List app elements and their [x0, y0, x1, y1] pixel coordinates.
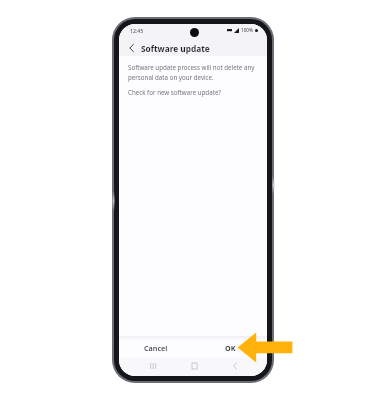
- staticText: Check for new software update?: [128, 88, 222, 96]
- button[interactable]: Back: [226, 357, 244, 375]
- staticText: Cancel: [144, 343, 168, 353]
- staticText: Software update: [141, 43, 210, 54]
- staticText: OK: [225, 343, 236, 353]
- button[interactable]: Recents: [144, 357, 162, 375]
- button[interactable]: Home: [185, 357, 203, 375]
- button[interactable]: Back: [125, 41, 138, 55]
- staticText: 12:45: [130, 27, 144, 34]
- button[interactable]: Cancel: [119, 340, 193, 358]
- staticText: Software update process will not delete …: [128, 63, 260, 82]
- button[interactable]: OK: [193, 340, 267, 358]
- staticText: 100%: [241, 27, 253, 33]
